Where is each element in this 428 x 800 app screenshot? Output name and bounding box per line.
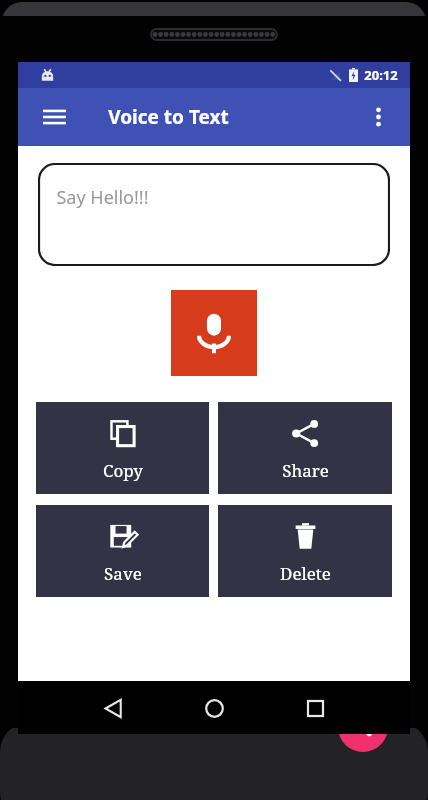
staticText: Share xyxy=(282,459,329,482)
staticText: Say Hello!!! xyxy=(56,185,149,210)
button[interactable]: Share xyxy=(218,402,392,494)
button[interactable]: More options xyxy=(360,99,396,135)
staticText: Copy xyxy=(103,459,143,482)
staticText: 20:12 xyxy=(364,66,398,84)
staticText: Voice to Text xyxy=(108,104,229,130)
button[interactable]: Copy xyxy=(36,402,209,494)
button[interactable]: Share xyxy=(338,702,388,752)
button[interactable]: Home xyxy=(193,687,235,729)
button[interactable]: Delete xyxy=(218,505,392,597)
staticText: Save xyxy=(104,562,142,585)
button[interactable]: Start voice input xyxy=(171,290,257,376)
button[interactable]: Save xyxy=(36,505,209,597)
button[interactable]: Recent apps xyxy=(294,687,336,729)
button[interactable]: Back xyxy=(92,687,134,729)
button[interactable]: Say Hello!!! xyxy=(38,163,390,266)
staticText: Delete xyxy=(280,562,331,585)
button[interactable]: Open navigation menu xyxy=(34,97,74,137)
